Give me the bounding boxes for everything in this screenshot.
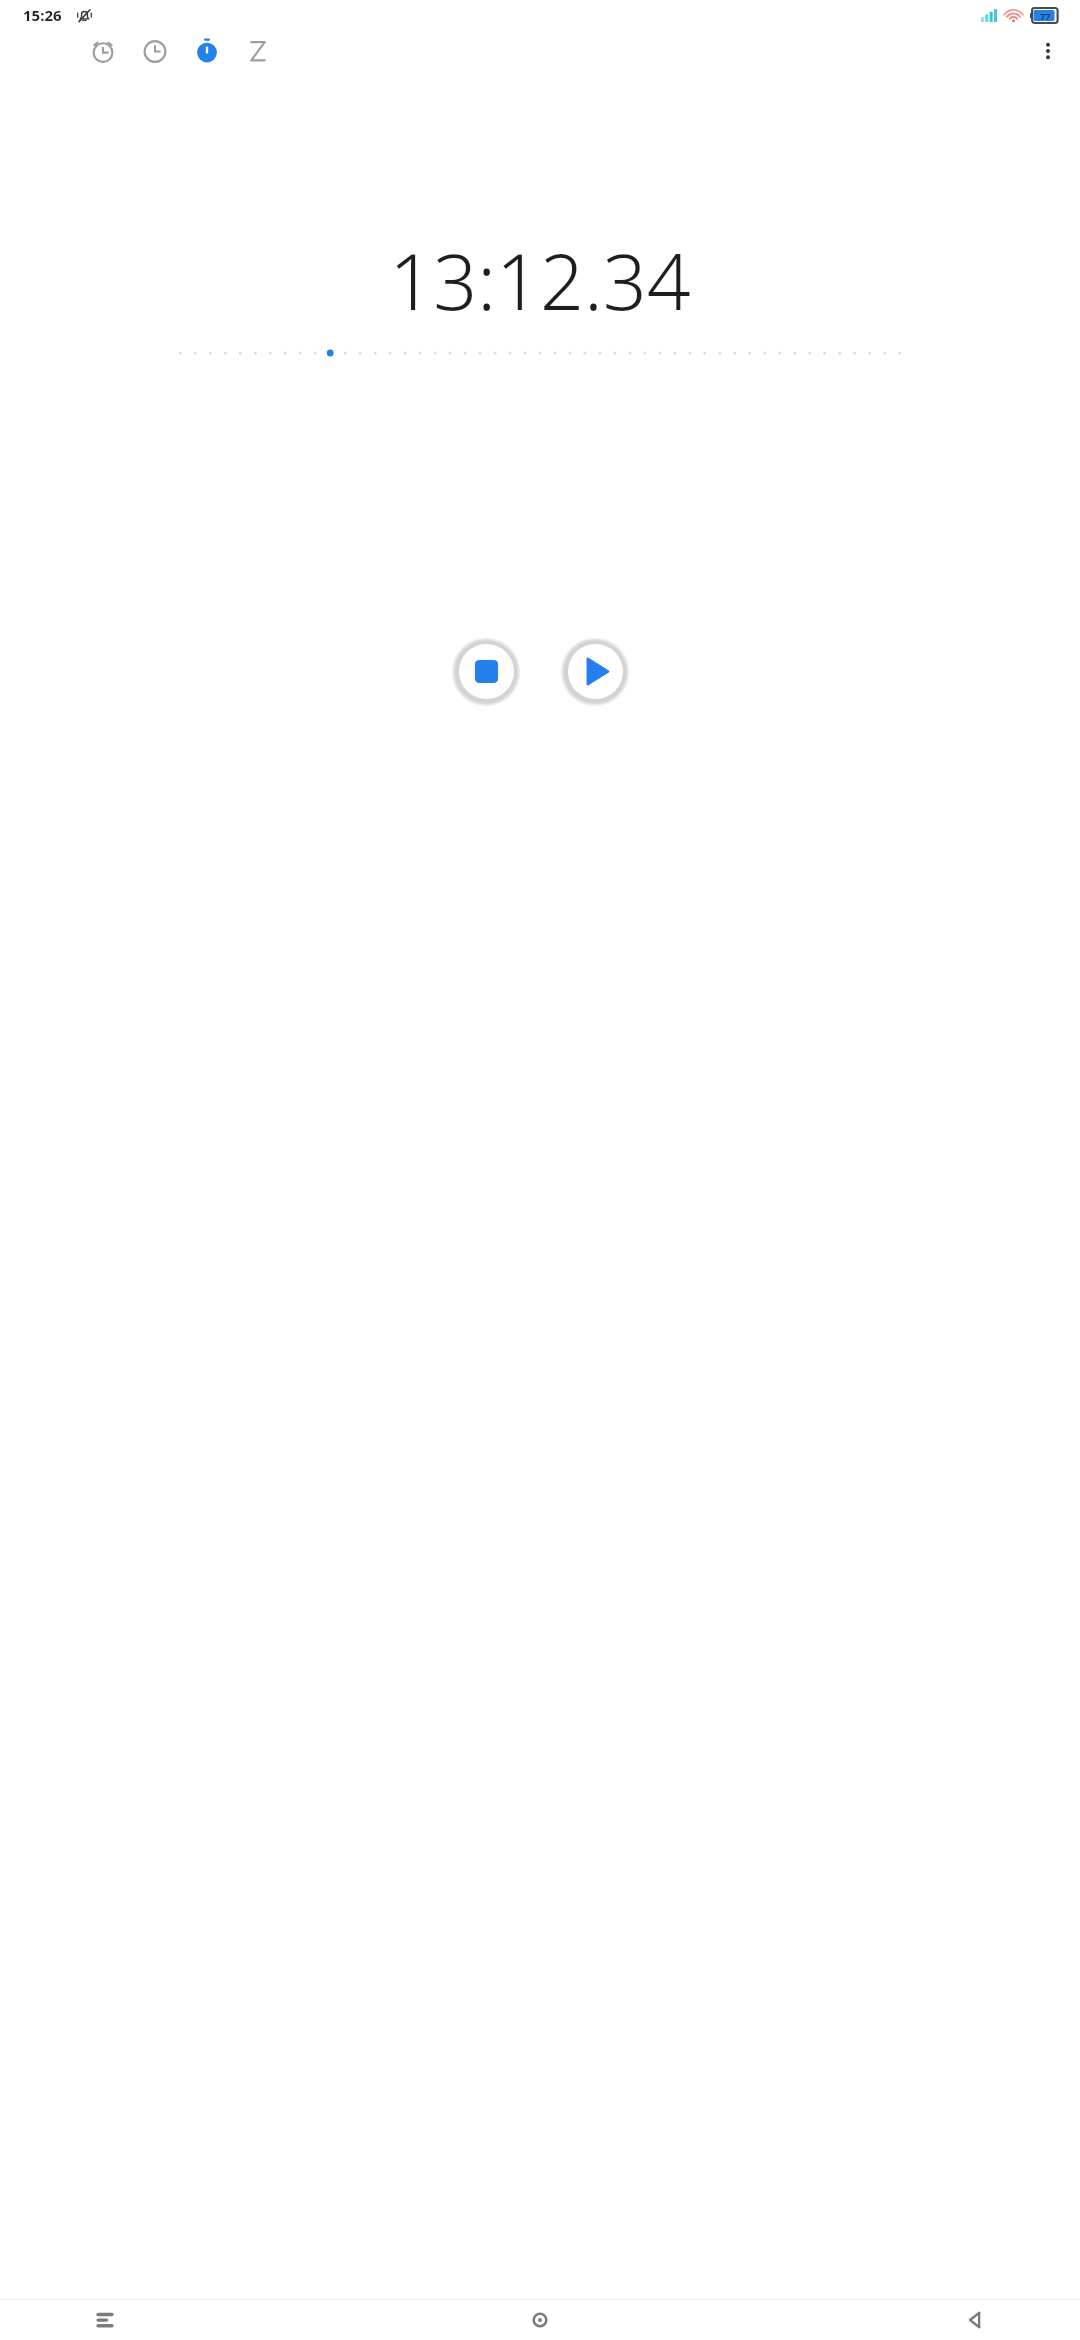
staticText: 77: [1040, 10, 1051, 22]
staticText: 15:26: [23, 5, 62, 25]
button[interactable]: Timer: [234, 27, 282, 75]
button[interactable]: Home: [516, 2300, 564, 2340]
button[interactable]: More options: [1024, 27, 1072, 75]
button[interactable]: Recents: [81, 2300, 129, 2340]
staticText: 13:12.34: [0, 228, 1080, 333]
button[interactable]: Start: [568, 644, 623, 699]
button[interactable]: Stopwatch: [183, 27, 231, 75]
button[interactable]: Clock: [131, 27, 179, 75]
button[interactable]: Alarm: [79, 27, 127, 75]
button[interactable]: Back: [951, 2300, 999, 2340]
button[interactable]: Stop: [459, 644, 514, 699]
